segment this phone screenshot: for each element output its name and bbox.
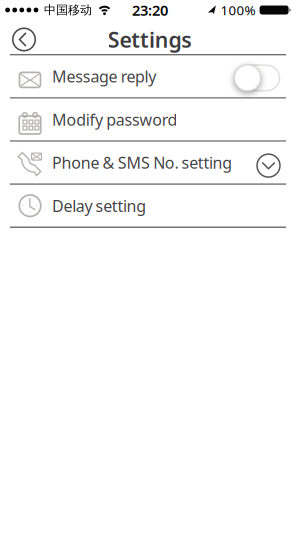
staticText: Phone & SMS No. setting <box>52 152 232 173</box>
staticText: 中国移动 <box>44 3 92 17</box>
staticText: Message reply <box>52 66 156 87</box>
button[interactable]: Modify password <box>0 99 300 140</box>
staticText: 100% <box>221 1 256 19</box>
staticText: Modify password <box>52 109 177 130</box>
button[interactable]: Message reply <box>234 64 280 91</box>
button[interactable]: Back <box>9 24 39 54</box>
button[interactable]: Delay setting <box>0 185 300 226</box>
staticText: 23:20 <box>132 0 168 20</box>
staticText: Delay setting <box>52 195 146 216</box>
staticText: Settings <box>108 25 192 54</box>
button[interactable]: Phone & SMS No. setting <box>0 142 300 183</box>
